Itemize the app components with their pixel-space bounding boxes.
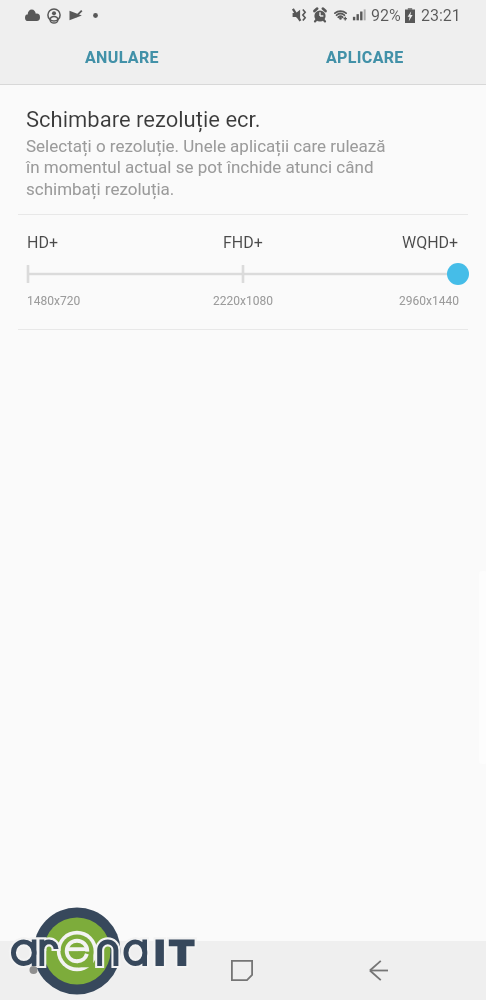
- staticText: FHD+: [223, 233, 263, 252]
- button[interactable]: ANULARE: [0, 30, 243, 84]
- button[interactable]: APLICARE: [243, 30, 486, 84]
- staticText: 23:21: [421, 6, 461, 25]
- staticText: 92%: [371, 6, 401, 25]
- button[interactable]: Menu: [78, 942, 134, 998]
- staticText: 2220x1080: [213, 294, 273, 308]
- button[interactable]: Recent apps: [214, 942, 270, 998]
- button[interactable]: Back: [350, 942, 406, 998]
- staticText: HD+: [27, 233, 58, 252]
- staticText: 2960x1440: [399, 294, 459, 308]
- staticText: APLICARE: [326, 48, 404, 67]
- button[interactable]: [18, 261, 468, 287]
- staticText: ANULARE: [85, 48, 159, 67]
- staticText: Schimbare rezoluție ecr.: [26, 107, 261, 133]
- staticText: WQHD+: [402, 233, 459, 252]
- staticText: Selectați o rezoluție. Unele aplicații c…: [26, 136, 392, 200]
- staticText: 1480x720: [27, 294, 81, 308]
